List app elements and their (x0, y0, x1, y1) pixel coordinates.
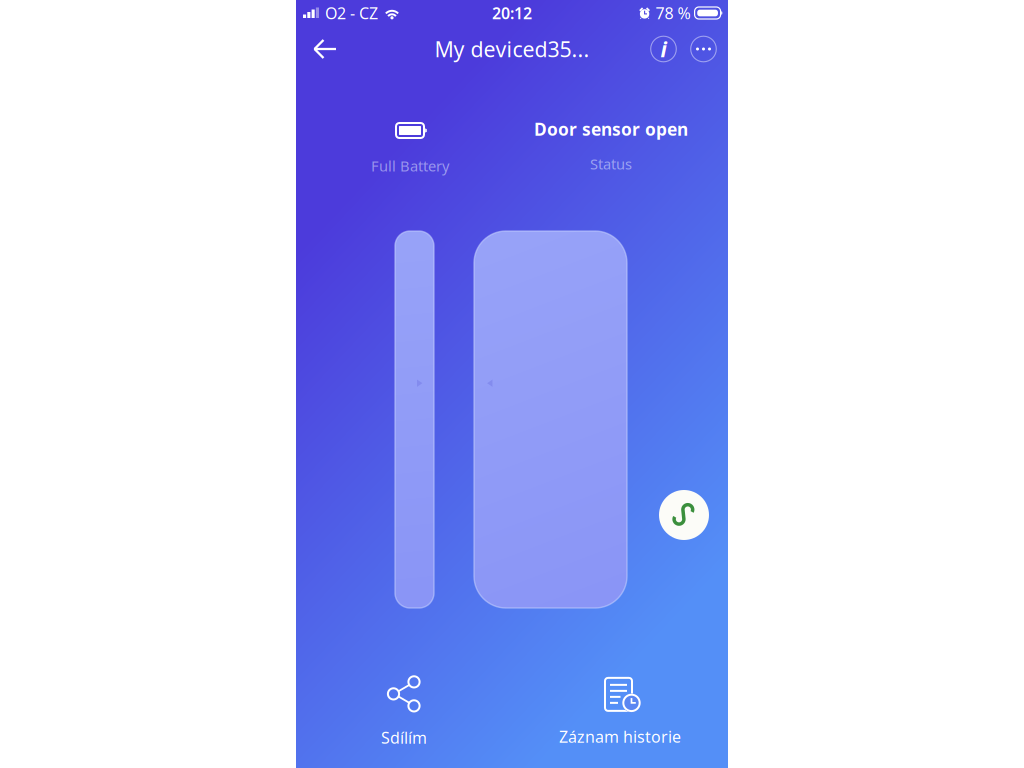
staticText: Status (590, 154, 632, 173)
staticText: Full Battery (371, 156, 449, 175)
button[interactable]: Záznam historie (512, 672, 728, 752)
staticText: O2 - CZ (325, 2, 378, 24)
staticText: Door sensor open (534, 117, 688, 140)
button[interactable]: Device information (643, 27, 684, 71)
staticText: Sdílím (381, 727, 427, 748)
button[interactable]: Back (302, 27, 348, 71)
staticText: Záznam historie (559, 726, 681, 747)
button[interactable]: Sdílím (296, 672, 512, 752)
button[interactable]: Mini program (659, 490, 709, 540)
staticText: 20:12 (492, 2, 532, 24)
button[interactable]: More options (684, 27, 723, 71)
staticText: i (660, 35, 666, 63)
staticText: My deviced35... (434, 35, 589, 63)
staticText: 78 % (656, 2, 691, 24)
